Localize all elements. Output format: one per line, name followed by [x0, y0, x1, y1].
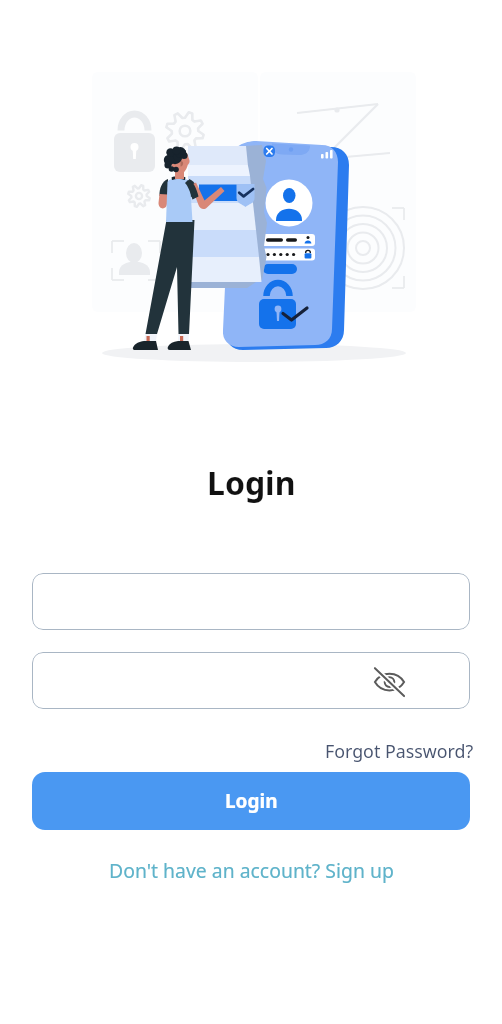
button[interactable]: Forgot Password?: [325, 739, 474, 763]
staticText: Login: [207, 461, 296, 505]
button[interactable]: Login: [32, 772, 470, 830]
button[interactable]: Toggle password visibility: [368, 660, 410, 702]
staticText: Don't have an account? Sign up: [109, 857, 394, 883]
button[interactable]: Toggle password visibility: [32, 652, 470, 709]
staticText: Login: [225, 788, 278, 814]
button[interactable]: Don't have an account? Sign up: [109, 857, 394, 883]
staticText: Forgot Password?: [325, 739, 474, 763]
button[interactable]: [32, 573, 470, 630]
